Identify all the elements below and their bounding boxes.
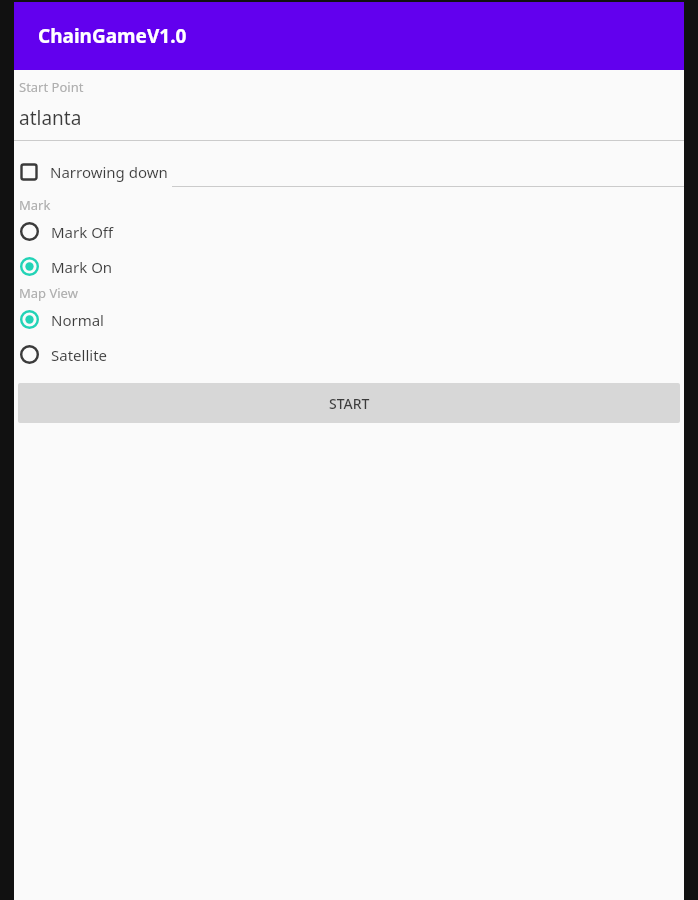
button[interactable]: Normal	[14, 302, 684, 337]
staticText: Mark On	[51, 257, 113, 277]
staticText: Normal	[51, 310, 104, 330]
staticText: atlanta	[19, 105, 82, 131]
staticText: Mark	[19, 196, 51, 214]
staticText: ChainGameV1.0	[38, 23, 187, 49]
staticText: Satellite	[51, 345, 108, 365]
staticText: Map View	[19, 284, 78, 302]
button[interactable]: Satellite	[14, 337, 684, 372]
button[interactable]: Mark On	[14, 249, 684, 284]
button[interactable]: ChainGameV1.0	[14, 2, 684, 70]
staticText: Start Point	[19, 78, 84, 96]
button[interactable]: atlanta	[14, 105, 684, 141]
button[interactable]: Mark Off	[14, 214, 684, 249]
staticText: START	[329, 394, 370, 413]
button[interactable]: START	[18, 383, 680, 423]
staticText: Mark Off	[51, 222, 114, 242]
button[interactable]: Narrowing down	[14, 162, 178, 182]
staticText: Narrowing down	[50, 162, 168, 182]
